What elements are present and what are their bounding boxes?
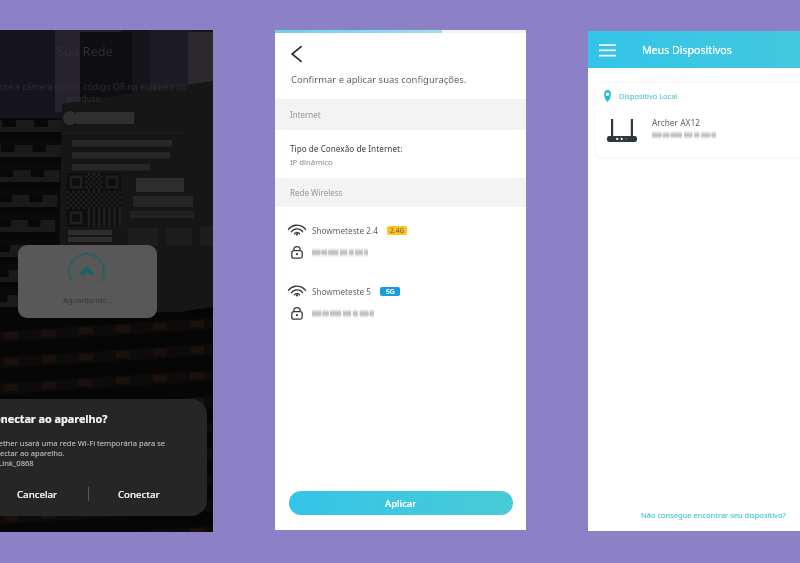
staticText: Sua Rede: [57, 42, 113, 59]
staticText: Confirmar e aplicar suas configurações.: [291, 73, 467, 86]
button[interactable]: Showmeteste 5: [275, 285, 526, 320]
button[interactable]: Menu: [592, 35, 622, 65]
button[interactable]: Aguardando...: [18, 245, 157, 318]
staticText: Dispositivo Local: [619, 91, 678, 101]
staticText: TP-Link_0868: [0, 458, 34, 468]
button[interactable]: Dispositivo Local: [595, 83, 800, 157]
staticText: Meus Dispositivos: [642, 43, 732, 57]
staticText: 2.4G: [390, 226, 405, 235]
button[interactable]: Showmeteste 2.4: [275, 224, 526, 259]
button[interactable]: Não consegue encontrar seu dispositivo?: [641, 510, 786, 520]
button[interactable]: Conectar: [108, 482, 169, 506]
button[interactable]: Aplicar: [289, 491, 513, 515]
staticText: Conectar: [118, 488, 160, 501]
button[interactable]: Cancelar: [7, 482, 68, 506]
staticText: Aponte a câmera para o código QR na etiq…: [0, 81, 187, 105]
staticText: Conectar ao aparelho?: [0, 411, 108, 426]
staticText: Tipo de Conexão de Internet:: [290, 143, 403, 154]
staticText: Rede Wireless: [290, 187, 343, 198]
staticText: O Tether usará uma rede Wi-Fi temporária…: [0, 438, 182, 458]
staticText: Archer AX12: [652, 117, 701, 128]
staticText: Não consegue encontrar seu dispositivo?: [641, 510, 786, 520]
staticText: Aplicar: [385, 497, 417, 510]
staticText: Cancelar: [17, 488, 58, 501]
button[interactable]: Back: [280, 38, 312, 70]
staticText: Internet: [290, 109, 321, 120]
staticText: Aguardando...: [63, 295, 113, 305]
staticText: Showmeteste 5: [312, 286, 371, 297]
staticText: Showmeteste 2.4: [312, 225, 378, 236]
staticText: IP dinâmico: [290, 157, 333, 168]
staticText: 5G: [386, 287, 395, 296]
